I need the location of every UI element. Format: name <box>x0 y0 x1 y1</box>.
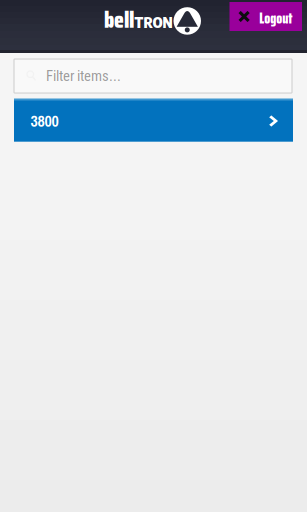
button[interactable]: 3800 <box>14 98 293 141</box>
staticText: bell <box>104 2 134 38</box>
staticText: 3800 <box>30 110 58 132</box>
button[interactable]: Logout <box>229 2 302 31</box>
staticText: TRON <box>134 13 172 31</box>
staticText: Logout <box>259 6 292 30</box>
staticText: Filter items... <box>46 67 121 85</box>
